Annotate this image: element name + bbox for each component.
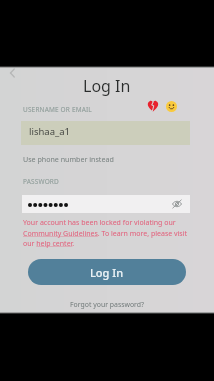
button[interactable]: Use phone number instead xyxy=(23,154,114,164)
button[interactable]: Hide password xyxy=(22,195,190,213)
button[interactable]: lishaa_a1 xyxy=(21,121,190,145)
button[interactable]: Back xyxy=(2,63,22,83)
staticText: lishaa_a1 xyxy=(29,125,70,138)
staticText: USERNAME OR EMAIL xyxy=(23,105,92,114)
staticText: Log In xyxy=(90,265,124,280)
button[interactable]: Log In xyxy=(28,259,186,285)
staticText: Log In xyxy=(83,75,131,97)
staticText: PASSWORD xyxy=(23,177,59,186)
staticText: Your account has been locked for violati… xyxy=(23,218,193,248)
button[interactable]: Forgot your password? xyxy=(70,300,145,309)
button[interactable]: Hide password xyxy=(170,197,184,211)
